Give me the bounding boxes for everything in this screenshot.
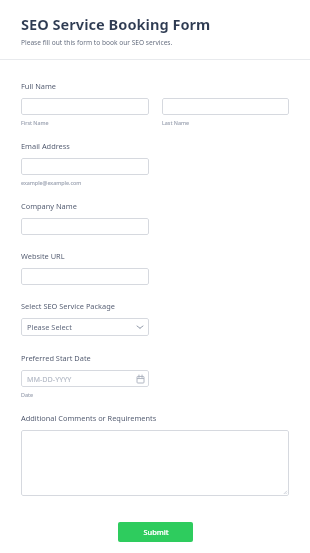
- staticText: First Name: [21, 119, 49, 126]
- button[interactable]: Additional Comments or Requirements: [21, 430, 289, 496]
- button[interactable]: Select SEO Service Package: [21, 318, 149, 336]
- staticText: Please fill out this form to book our SE…: [21, 38, 173, 47]
- staticText: Select SEO Service Package: [21, 301, 115, 311]
- staticText: example@example.com: [21, 179, 82, 186]
- staticText: Company Name: [21, 201, 77, 211]
- button[interactable]: Company Name: [21, 218, 149, 235]
- button[interactable]: First Name: [21, 98, 149, 115]
- staticText: Date: [21, 391, 33, 398]
- staticText: Preferred Start Date: [21, 353, 91, 363]
- staticText: Additional Comments or Requirements: [21, 413, 157, 423]
- staticText: Full Name: [21, 81, 56, 91]
- staticText: Email Address: [21, 141, 70, 151]
- staticText: Please Select: [27, 322, 72, 332]
- button[interactable]: Last Name: [162, 98, 289, 115]
- staticText: SEO Service Booking Form: [21, 14, 211, 34]
- button[interactable]: Website URL: [21, 268, 149, 285]
- button[interactable]: Email Address: [21, 158, 149, 175]
- staticText: MM-DD-YYYY: [27, 374, 72, 384]
- staticText: Last Name: [162, 119, 189, 126]
- staticText: Website URL: [21, 251, 65, 261]
- button[interactable]: Preferred Start Date: [21, 370, 149, 387]
- staticText: Submit: [143, 527, 169, 537]
- button[interactable]: Submit: [118, 522, 193, 542]
